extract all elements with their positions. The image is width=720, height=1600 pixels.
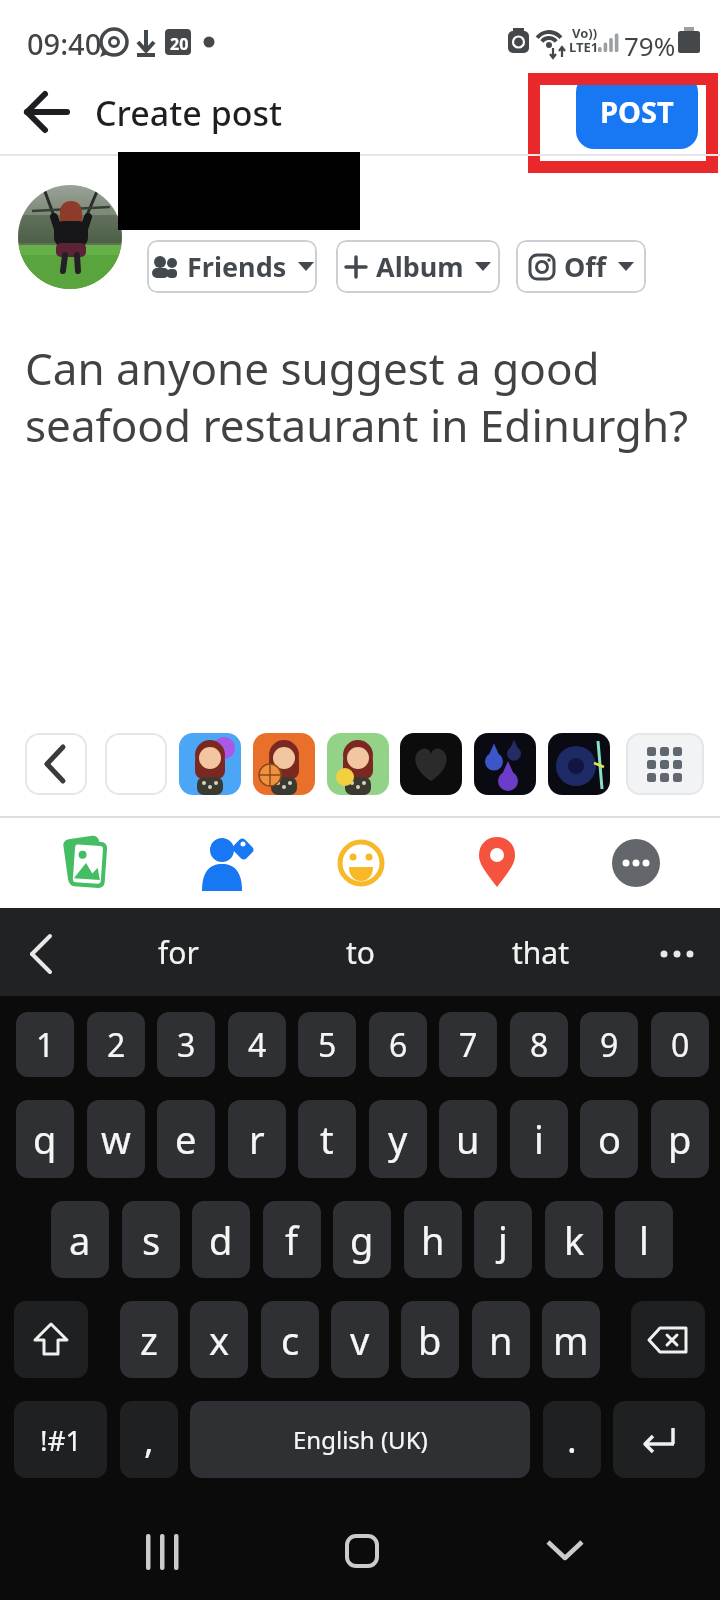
button[interactable]: [631, 1301, 705, 1378]
button[interactable]: [15, 85, 75, 140]
button[interactable]: x: [190, 1301, 248, 1378]
staticText: v: [350, 1314, 370, 1366]
button[interactable]: POST: [576, 74, 698, 149]
button[interactable]: c: [261, 1301, 319, 1378]
button[interactable]: d: [192, 1201, 250, 1278]
button[interactable]: [105, 733, 167, 795]
staticText: 09:40: [27, 24, 102, 63]
staticText: b: [418, 1314, 442, 1366]
button[interactable]: [179, 733, 241, 795]
staticText: n: [489, 1314, 513, 1366]
button[interactable]: [400, 733, 462, 795]
staticText: 5: [318, 1023, 337, 1067]
button[interactable]: k: [545, 1201, 603, 1278]
button[interactable]: [196, 833, 256, 893]
staticText: p: [668, 1113, 692, 1165]
staticText: 2: [107, 1023, 126, 1067]
button[interactable]: q: [16, 1100, 74, 1178]
button[interactable]: v: [331, 1301, 389, 1378]
staticText: LTE1: [569, 38, 599, 56]
staticText: Off: [564, 248, 607, 285]
button[interactable]: [548, 733, 610, 795]
button[interactable]: [473, 835, 521, 891]
staticText: a: [69, 1214, 91, 1266]
button[interactable]: i: [510, 1100, 568, 1178]
button[interactable]: l: [615, 1201, 673, 1278]
button[interactable]: j: [474, 1201, 532, 1278]
staticText: !#1: [40, 1421, 82, 1459]
staticText: 0: [671, 1023, 690, 1067]
button[interactable]: [613, 1401, 705, 1478]
button[interactable]: b: [401, 1301, 459, 1378]
staticText: k: [564, 1214, 585, 1266]
button[interactable]: w: [87, 1100, 145, 1178]
button[interactable]: 5: [298, 1012, 356, 1077]
button[interactable]: !#1: [14, 1401, 107, 1478]
staticText: that: [512, 932, 570, 973]
button[interactable]: g: [333, 1201, 391, 1278]
button[interactable]: h: [404, 1201, 462, 1278]
button[interactable]: Friends: [147, 240, 317, 293]
button[interactable]: [14, 1301, 88, 1378]
staticText: s: [142, 1214, 161, 1266]
button[interactable]: [474, 733, 536, 795]
staticText: Vo)): [572, 24, 598, 42]
staticText: i: [534, 1113, 544, 1165]
button[interactable]: o: [580, 1100, 638, 1178]
button[interactable]: 0: [651, 1012, 709, 1077]
staticText: l: [639, 1214, 649, 1266]
staticText: m: [553, 1314, 589, 1366]
staticText: for: [158, 932, 199, 973]
button[interactable]: 1: [16, 1012, 74, 1077]
button[interactable]: 2: [87, 1012, 145, 1077]
button[interactable]: z: [120, 1301, 178, 1378]
staticText: to: [346, 932, 375, 973]
staticText: 20: [170, 33, 189, 55]
button[interactable]: [25, 733, 87, 795]
button[interactable]: 7: [439, 1012, 497, 1077]
staticText: c: [281, 1314, 300, 1366]
button[interactable]: s: [122, 1201, 180, 1278]
button[interactable]: 4: [228, 1012, 286, 1077]
staticText: u: [456, 1113, 480, 1165]
staticText: t: [320, 1113, 334, 1165]
staticText: 6: [389, 1023, 408, 1067]
button[interactable]: [337, 839, 385, 887]
staticText: q: [33, 1113, 57, 1165]
button[interactable]: Album: [336, 240, 500, 293]
button[interactable]: [58, 835, 114, 891]
button[interactable]: Off: [516, 240, 646, 293]
button[interactable]: English (UK): [190, 1401, 530, 1478]
staticText: g: [350, 1214, 374, 1266]
button[interactable]: t: [298, 1100, 356, 1178]
button[interactable]: [612, 839, 660, 887]
staticText: 8: [530, 1023, 549, 1067]
button[interactable]: that: [491, 918, 591, 986]
button[interactable]: 6: [369, 1012, 427, 1077]
staticText: r: [249, 1113, 265, 1165]
staticText: 7: [459, 1023, 478, 1067]
button[interactable]: for: [128, 918, 228, 986]
button[interactable]: y: [369, 1100, 427, 1178]
button[interactable]: a: [51, 1201, 109, 1278]
button[interactable]: .: [543, 1401, 601, 1478]
button[interactable]: 8: [510, 1012, 568, 1077]
button[interactable]: [327, 733, 389, 795]
button[interactable]: [626, 733, 704, 795]
button[interactable]: ,: [120, 1401, 178, 1478]
staticText: 1: [36, 1023, 55, 1067]
button[interactable]: f: [263, 1201, 321, 1278]
staticText: z: [140, 1314, 158, 1366]
button[interactable]: m: [542, 1301, 600, 1378]
button[interactable]: 3: [157, 1012, 215, 1077]
button[interactable]: n: [472, 1301, 530, 1378]
staticText: f: [285, 1214, 299, 1266]
button[interactable]: to: [310, 918, 410, 986]
button[interactable]: 9: [580, 1012, 638, 1077]
button[interactable]: [253, 733, 315, 795]
staticText: h: [421, 1214, 445, 1266]
button[interactable]: e: [157, 1100, 215, 1178]
button[interactable]: u: [439, 1100, 497, 1178]
button[interactable]: p: [651, 1100, 709, 1178]
button[interactable]: r: [228, 1100, 286, 1178]
